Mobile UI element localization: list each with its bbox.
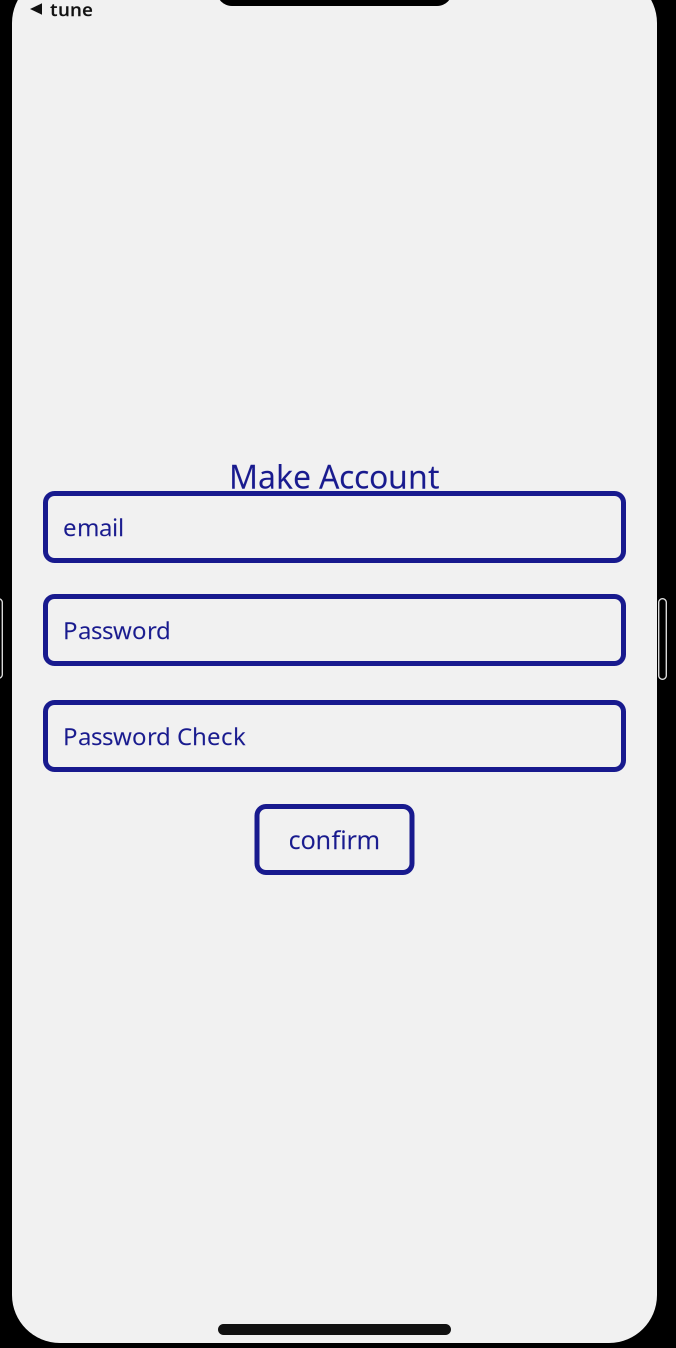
staticText: email <box>63 511 124 543</box>
staticText: tune <box>50 0 93 21</box>
staticText: confirm <box>288 823 380 856</box>
button[interactable]: email <box>43 491 626 563</box>
button[interactable]: Password Check <box>43 700 626 772</box>
button[interactable]: Password <box>43 594 626 666</box>
button[interactable]: confirm <box>254 804 414 875</box>
button[interactable]: Back to tune <box>30 0 93 20</box>
staticText: Password Check <box>63 720 246 752</box>
staticText: Password <box>63 614 171 646</box>
staticText: Make Account <box>229 455 440 497</box>
